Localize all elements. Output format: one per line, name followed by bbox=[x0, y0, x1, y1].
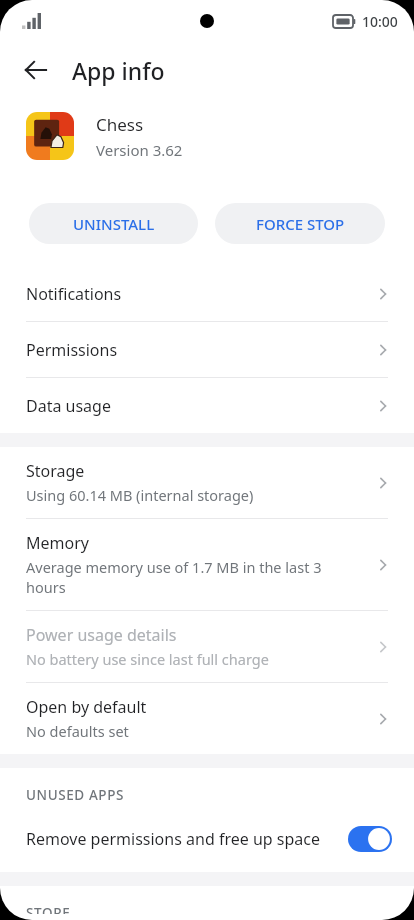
staticText: Version 3.62 bbox=[96, 140, 183, 160]
staticText: No defaults set bbox=[26, 721, 129, 741]
staticText: Notifications bbox=[26, 283, 374, 305]
staticText: Remove permissions and free up space bbox=[26, 828, 320, 850]
staticText: Chess bbox=[96, 113, 144, 136]
button[interactable]: Power usage details bbox=[0, 611, 414, 682]
button[interactable]: Open by default bbox=[0, 683, 414, 754]
staticText: Average memory use of 1.7 MB in the last… bbox=[26, 557, 356, 597]
button[interactable]: Permissions bbox=[0, 322, 414, 377]
staticText: Open by default bbox=[26, 696, 147, 718]
staticText: No battery use since last full charge bbox=[26, 649, 269, 669]
staticText: Using 60.14 MB (internal storage) bbox=[26, 485, 254, 505]
staticText: Power usage details bbox=[26, 624, 177, 646]
button[interactable]: Storage bbox=[0, 447, 414, 518]
button[interactable]: Memory bbox=[0, 519, 414, 610]
staticText: STORE bbox=[26, 904, 71, 914]
button[interactable]: Back bbox=[14, 48, 58, 92]
staticText: UNUSED APPS bbox=[26, 786, 125, 804]
button[interactable]: Remove permissions toggle bbox=[348, 826, 392, 852]
staticText: Memory bbox=[26, 532, 89, 554]
button[interactable]: Remove permissions and free up space bbox=[0, 810, 414, 872]
staticText: Data usage bbox=[26, 395, 374, 417]
button[interactable]: UNINSTALL bbox=[29, 203, 198, 244]
staticText: FORCE STOP bbox=[256, 214, 345, 234]
button[interactable]: Notifications bbox=[0, 266, 414, 321]
staticText: 10:00 bbox=[362, 12, 398, 31]
button[interactable]: FORCE STOP bbox=[215, 203, 385, 244]
button[interactable]: Data usage bbox=[0, 378, 414, 433]
staticText: App info bbox=[72, 55, 165, 86]
staticText: UNINSTALL bbox=[73, 214, 155, 234]
staticText: Storage bbox=[26, 460, 85, 482]
staticText: Permissions bbox=[26, 339, 374, 361]
